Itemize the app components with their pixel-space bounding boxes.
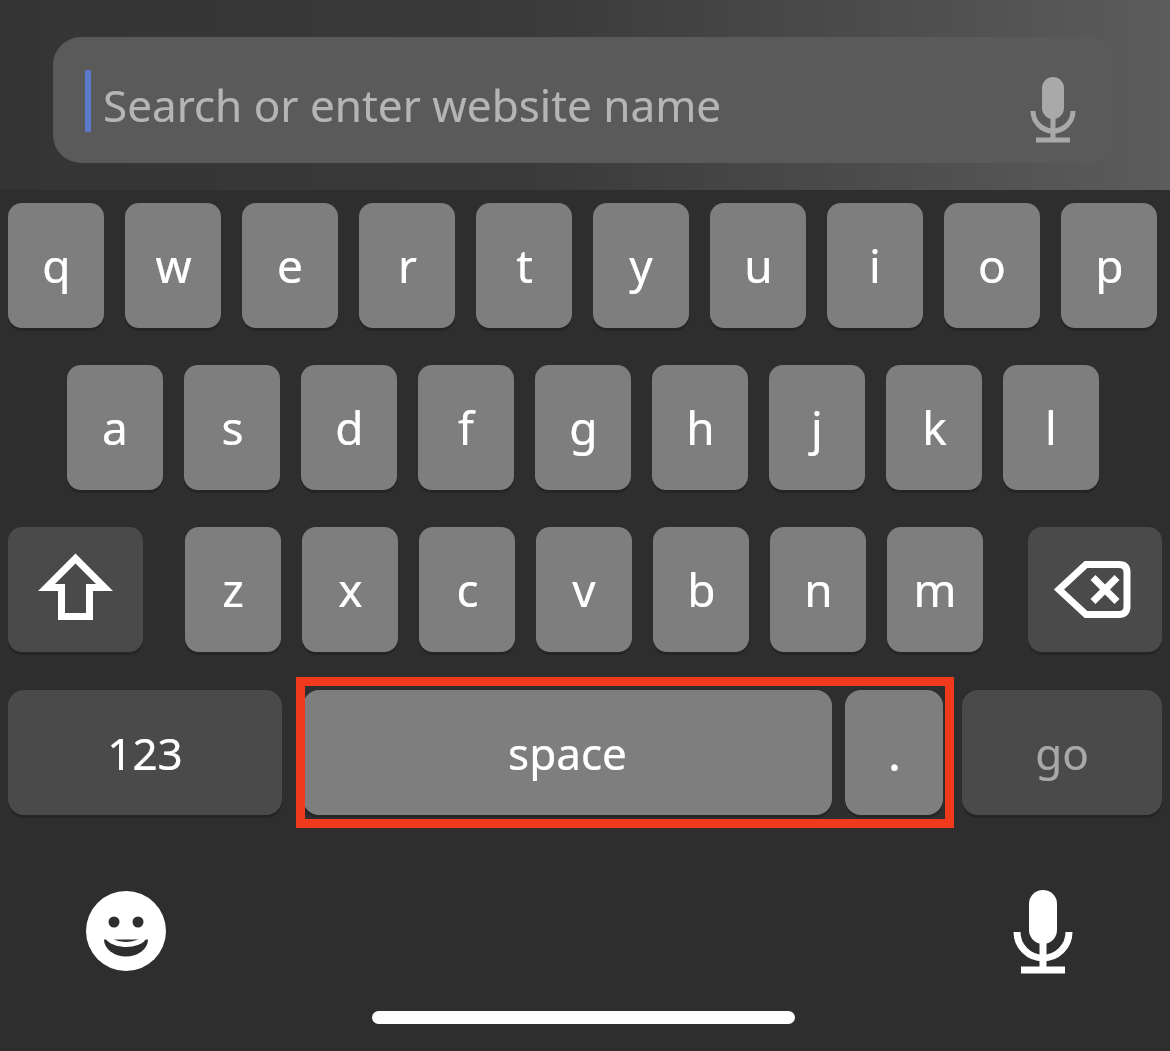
staticText: s xyxy=(221,396,244,459)
button[interactable]: 123 xyxy=(8,690,282,815)
button[interactable]: i xyxy=(827,203,923,328)
staticText: q xyxy=(42,234,71,297)
button[interactable]: p xyxy=(1061,203,1157,328)
staticText: w xyxy=(155,234,192,297)
button[interactable]: c xyxy=(419,527,515,652)
button[interactable]: n xyxy=(770,527,866,652)
staticText: . xyxy=(888,720,901,785)
button[interactable]: y xyxy=(593,203,689,328)
button[interactable]: Shift xyxy=(8,527,143,652)
staticText: l xyxy=(1045,396,1057,459)
staticText: h xyxy=(686,396,715,459)
staticText: go xyxy=(1035,723,1089,783)
staticText: c xyxy=(456,558,479,621)
button[interactable]: r xyxy=(359,203,455,328)
staticText: 123 xyxy=(107,723,183,783)
button[interactable]: Dictation xyxy=(1004,888,1082,980)
staticText: m xyxy=(913,558,957,621)
button[interactable]: l xyxy=(1003,365,1099,490)
staticText: o xyxy=(978,234,1006,297)
staticText: r xyxy=(398,234,417,297)
button[interactable]: Emoji xyxy=(86,891,166,971)
button[interactable]: x xyxy=(302,527,398,652)
staticText: p xyxy=(1095,234,1124,297)
staticText: x xyxy=(338,558,363,621)
staticText: Search or enter website name xyxy=(103,75,722,135)
staticText: b xyxy=(687,558,716,621)
button[interactable]: u xyxy=(710,203,806,328)
staticText: y xyxy=(629,234,653,297)
button[interactable]: f xyxy=(418,365,514,490)
button[interactable]: g xyxy=(535,365,631,490)
button[interactable]: go xyxy=(962,690,1162,815)
button[interactable]: Backspace xyxy=(1028,527,1162,652)
button[interactable]: Search or enter website name xyxy=(53,37,1117,163)
staticText: f xyxy=(458,396,474,459)
staticText: t xyxy=(516,234,533,297)
button[interactable]: v xyxy=(536,527,632,652)
button[interactable]: h xyxy=(652,365,748,490)
button[interactable]: m xyxy=(887,527,983,652)
staticText: v xyxy=(572,558,596,621)
staticText: a xyxy=(102,396,128,459)
button[interactable]: . xyxy=(845,690,943,815)
button[interactable]: d xyxy=(301,365,397,490)
button[interactable]: space xyxy=(303,690,832,815)
button[interactable]: t xyxy=(476,203,572,328)
staticText: g xyxy=(569,396,598,459)
staticText: e xyxy=(277,234,303,297)
staticText: z xyxy=(222,558,244,621)
button[interactable]: q xyxy=(8,203,104,328)
button[interactable]: j xyxy=(769,365,865,490)
button[interactable]: s xyxy=(184,365,280,490)
button[interactable]: a xyxy=(67,365,163,490)
staticText: u xyxy=(744,234,773,297)
staticText: j xyxy=(811,396,823,459)
staticText: space xyxy=(508,723,627,783)
button[interactable]: z xyxy=(185,527,281,652)
button[interactable]: e xyxy=(242,203,338,328)
other: Voice search xyxy=(1025,75,1081,149)
staticText: n xyxy=(804,558,833,621)
staticText: k xyxy=(922,396,947,459)
staticText: i xyxy=(869,234,881,297)
button[interactable]: w xyxy=(125,203,221,328)
button[interactable]: k xyxy=(886,365,982,490)
button[interactable]: o xyxy=(944,203,1040,328)
staticText: d xyxy=(335,396,364,459)
button[interactable]: b xyxy=(653,527,749,652)
